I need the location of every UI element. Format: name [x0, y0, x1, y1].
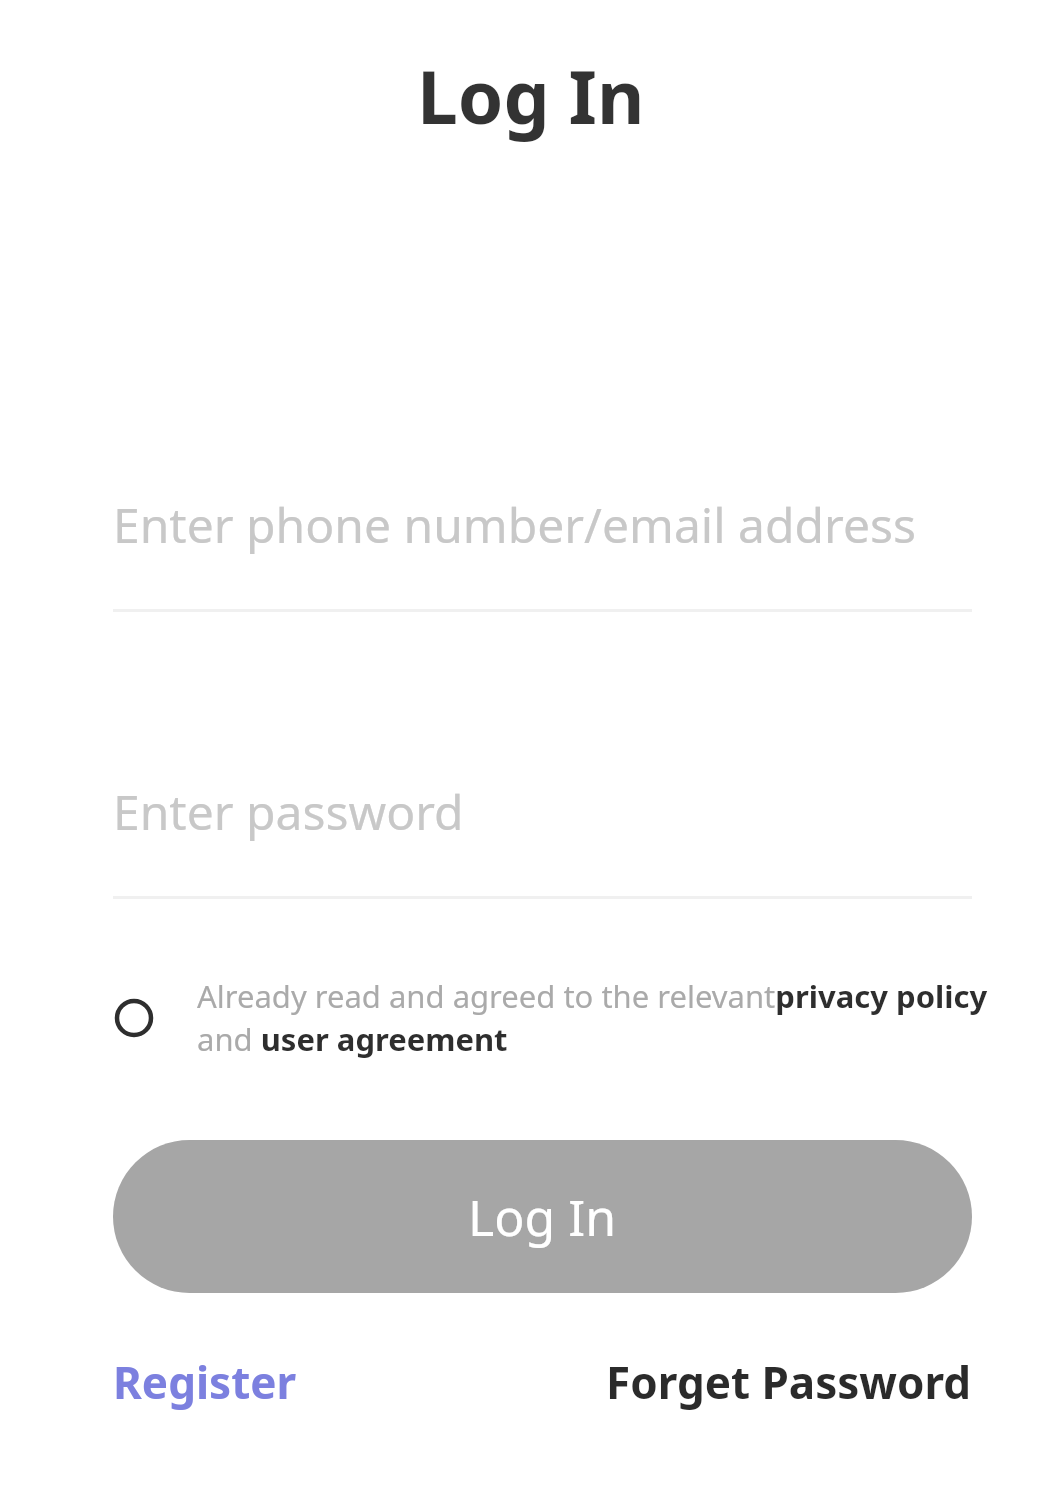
staticText: Forget Password: [606, 1352, 972, 1412]
staticText: Enter password: [113, 779, 464, 844]
staticText: Already read and agreed to the relevantp…: [197, 975, 1017, 1060]
button[interactable]: Enter phone number/email address: [113, 492, 972, 612]
button[interactable]: Forget Password: [606, 1352, 972, 1412]
button[interactable]: Register: [113, 1352, 297, 1412]
other: Agree to terms checkbox: [113, 997, 155, 1039]
button[interactable]: Agree to terms checkbox: [113, 975, 1017, 1060]
staticText: Enter phone number/email address: [113, 492, 916, 557]
staticText: Log In: [417, 46, 645, 145]
button[interactable]: Enter password: [113, 779, 972, 899]
staticText: Log In: [468, 1183, 617, 1251]
staticText: Register: [113, 1352, 297, 1412]
button[interactable]: Log In: [113, 1140, 972, 1293]
